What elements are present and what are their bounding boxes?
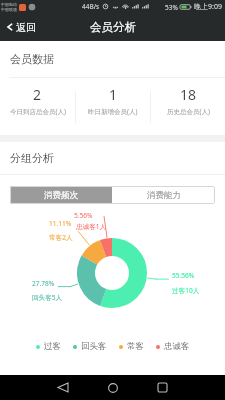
staticText: 过客 [44, 341, 61, 352]
staticText: 2 [33, 85, 42, 104]
staticText: 常客2人 [49, 233, 73, 242]
button[interactable]: 2 [0, 78, 75, 135]
staticText: 1 [109, 85, 118, 104]
button[interactable]: Recents [148, 375, 176, 400]
staticText: 分组分析 [10, 151, 54, 165]
button[interactable]: Home [99, 375, 127, 400]
button[interactable]: 常客 [119, 341, 144, 352]
staticText: 返回 [16, 21, 36, 34]
staticText: 53% [165, 3, 178, 12]
button[interactable]: 过客 [36, 341, 61, 352]
button[interactable]: 1 [76, 78, 150, 135]
staticText: 中国电信 [1, 2, 17, 7]
staticText: 回头客5人 [32, 293, 63, 302]
button[interactable]: 消费能力 [112, 186, 215, 204]
staticText: 中国联通 [1, 7, 17, 12]
staticText: 晚上9:09 [194, 2, 222, 12]
button[interactable]: 18 [151, 78, 225, 135]
staticText: 27.78% [32, 279, 55, 288]
staticText: 忠诚客1人 [76, 222, 107, 231]
staticText: 44B/s [82, 2, 100, 11]
button[interactable]: Back [49, 375, 77, 400]
button[interactable]: 忠诚客 [156, 341, 190, 352]
staticText: 昨日新增会员(人) [88, 107, 138, 116]
staticText: 历史总会员(人) [167, 107, 210, 116]
staticText: 回头客 [81, 341, 107, 352]
staticText: 常客 [127, 341, 144, 352]
staticText: 会员数据 [10, 52, 54, 66]
staticText: 18 [180, 85, 197, 104]
button[interactable]: 返回 [0, 13, 42, 41]
staticText: 忠诚客 [164, 341, 190, 352]
button[interactable]: 回头客 [73, 341, 107, 352]
button[interactable]: 消费频次 [10, 186, 112, 204]
staticText: 55.56% [172, 271, 195, 280]
staticText: 消费频次 [44, 190, 78, 201]
staticText: 今日到店总会员(人) [10, 107, 66, 116]
staticText: 过客10人 [172, 286, 200, 295]
staticText: 5.56% [74, 211, 93, 220]
staticText: 消费能力 [147, 190, 181, 201]
staticText: 11.11% [49, 219, 72, 228]
staticText: 会员分析 [90, 20, 136, 34]
